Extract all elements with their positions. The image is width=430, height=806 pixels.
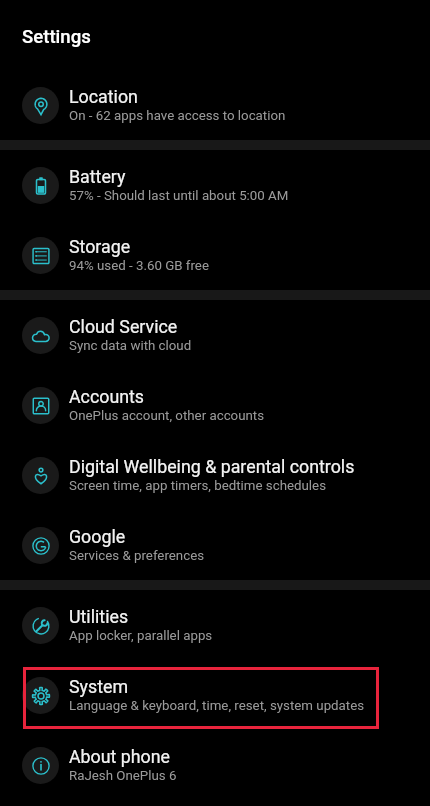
button[interactable]: Battery — [0, 150, 430, 220]
button[interactable]: Cloud Service — [0, 300, 430, 370]
button[interactable]: About phone — [0, 730, 430, 800]
button[interactable]: Location — [0, 70, 430, 140]
staticText: System — [69, 676, 129, 697]
staticText: Accounts — [69, 386, 145, 407]
staticText: Location — [69, 86, 138, 107]
staticText: Sync data with cloud — [69, 338, 192, 354]
staticText: On - 62 apps have access to location — [69, 108, 286, 124]
staticText: Language & keyboard, time, reset, system… — [69, 698, 365, 714]
button[interactable]: Google — [0, 510, 430, 580]
staticText: Battery — [69, 166, 126, 187]
staticText: 57% - Should last until about 5:00 AM — [69, 188, 289, 204]
staticText: RaJesh OnePlus 6 — [69, 768, 177, 784]
button[interactable]: Utilities — [0, 590, 430, 660]
staticText: Google — [69, 526, 126, 547]
staticText: Settings — [22, 26, 91, 48]
staticText: Cloud Service — [69, 316, 178, 337]
staticText: OnePlus account, other accounts — [69, 408, 265, 424]
staticText: About phone — [69, 746, 171, 767]
button[interactable]: System — [0, 660, 430, 730]
staticText: Storage — [69, 236, 131, 257]
staticText: Screen time, app timers, bedtime schedul… — [69, 478, 327, 494]
staticText: Services & preferences — [69, 548, 205, 564]
staticText: 94% used - 3.60 GB free — [69, 258, 209, 274]
staticText: Utilities — [69, 606, 129, 627]
staticText: App locker, parallel apps — [69, 628, 213, 644]
button[interactable]: Digital Wellbeing & parental controls — [0, 440, 430, 510]
staticText: Digital Wellbeing & parental controls — [69, 456, 355, 477]
button[interactable]: Accounts — [0, 370, 430, 440]
button[interactable]: Storage — [0, 220, 430, 290]
